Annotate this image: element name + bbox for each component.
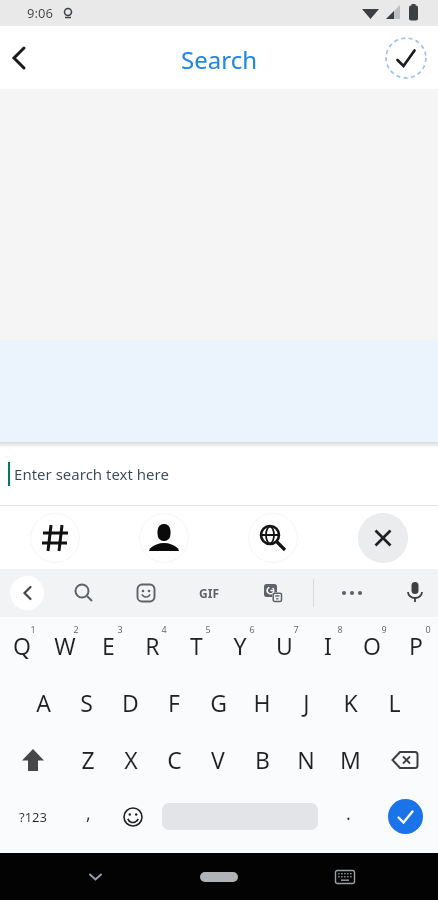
button[interactable]: F xyxy=(152,674,196,731)
button[interactable]: G xyxy=(196,674,240,731)
button[interactable]: . xyxy=(323,788,373,845)
button[interactable] xyxy=(139,513,189,563)
button[interactable]: Q xyxy=(0,617,43,674)
button[interactable] xyxy=(373,788,438,845)
button[interactable]: , xyxy=(66,788,110,845)
button[interactable]: Y xyxy=(218,617,262,674)
staticText: P xyxy=(409,630,423,661)
staticText: . xyxy=(346,801,351,826)
button[interactable]: M xyxy=(328,731,372,788)
button[interactable]: R xyxy=(130,617,174,674)
button[interactable] xyxy=(156,788,323,845)
staticText: E xyxy=(102,630,115,661)
staticText: ?123 xyxy=(19,808,47,826)
button[interactable]: D xyxy=(108,674,152,731)
button[interactable]: B xyxy=(240,731,284,788)
button[interactable] xyxy=(252,572,294,614)
button[interactable] xyxy=(394,572,436,614)
staticText: Search xyxy=(181,43,257,76)
button[interactable]: GIF xyxy=(188,572,230,614)
button[interactable] xyxy=(248,513,298,563)
staticText: Z xyxy=(81,744,95,775)
staticText: 3 xyxy=(117,623,123,635)
button[interactable]: T xyxy=(174,617,218,674)
button[interactable]: V xyxy=(196,731,240,788)
button[interactable]: U xyxy=(262,617,306,674)
staticText: L xyxy=(388,687,401,718)
button[interactable] xyxy=(30,513,80,563)
staticText: 2 xyxy=(73,623,79,635)
button[interactable] xyxy=(10,576,44,610)
staticText: S xyxy=(80,687,93,718)
staticText: 6 xyxy=(249,623,255,635)
staticText: O xyxy=(363,630,381,661)
button[interactable] xyxy=(125,572,167,614)
staticText: N xyxy=(297,744,315,775)
staticText: Y xyxy=(233,630,247,661)
staticText: I xyxy=(324,630,332,661)
button[interactable] xyxy=(385,37,427,79)
button[interactable] xyxy=(75,857,115,897)
staticText: B xyxy=(255,744,270,775)
staticText: X xyxy=(124,744,138,775)
staticText: W xyxy=(54,630,76,661)
staticText: 1 xyxy=(30,623,36,635)
staticText: GIF xyxy=(199,585,219,601)
button[interactable] xyxy=(0,731,66,788)
button[interactable]: Z xyxy=(66,731,109,788)
button[interactable] xyxy=(110,788,156,845)
button[interactable]: ?123 xyxy=(0,788,66,845)
staticText: V xyxy=(211,744,225,775)
button[interactable]: W xyxy=(43,617,86,674)
staticText: 0 xyxy=(425,623,431,635)
staticText: Enter search text here xyxy=(14,464,169,484)
button[interactable] xyxy=(325,857,365,897)
button[interactable] xyxy=(0,39,38,77)
staticText: 4 xyxy=(161,623,167,635)
button[interactable]: N xyxy=(284,731,328,788)
button[interactable] xyxy=(372,731,438,788)
staticText: 7 xyxy=(293,623,299,635)
staticText: R xyxy=(145,630,160,661)
button[interactable] xyxy=(189,857,249,897)
button[interactable]: X xyxy=(109,731,152,788)
staticText: 9 xyxy=(381,623,387,635)
button[interactable] xyxy=(358,513,408,563)
staticText: H xyxy=(253,687,271,718)
staticText: , xyxy=(86,801,91,826)
staticText: U xyxy=(276,630,293,661)
button[interactable]: L xyxy=(372,674,416,731)
staticText: K xyxy=(343,687,358,718)
staticText: D xyxy=(122,687,139,718)
button[interactable]: A xyxy=(22,674,65,731)
staticText: 8 xyxy=(337,623,343,635)
staticText: A xyxy=(36,687,51,718)
button[interactable]: S xyxy=(65,674,108,731)
button[interactable]: K xyxy=(328,674,372,731)
staticText: C xyxy=(167,744,182,775)
staticText: J xyxy=(303,687,310,718)
button[interactable]: H xyxy=(240,674,284,731)
button[interactable] xyxy=(331,572,373,614)
staticText: G xyxy=(210,687,227,718)
button[interactable]: P xyxy=(394,617,438,674)
staticText: Q xyxy=(13,630,31,661)
staticText: F xyxy=(168,687,180,718)
button[interactable]: E xyxy=(86,617,130,674)
button[interactable] xyxy=(63,572,105,614)
button[interactable]: O xyxy=(350,617,394,674)
staticText: T xyxy=(190,630,203,661)
button[interactable]: J xyxy=(284,674,328,731)
staticText: M xyxy=(340,744,361,775)
button[interactable]: C xyxy=(152,731,196,788)
button[interactable]: I xyxy=(306,617,350,674)
staticText: 9:06 xyxy=(27,4,53,22)
staticText: 5 xyxy=(205,623,211,635)
